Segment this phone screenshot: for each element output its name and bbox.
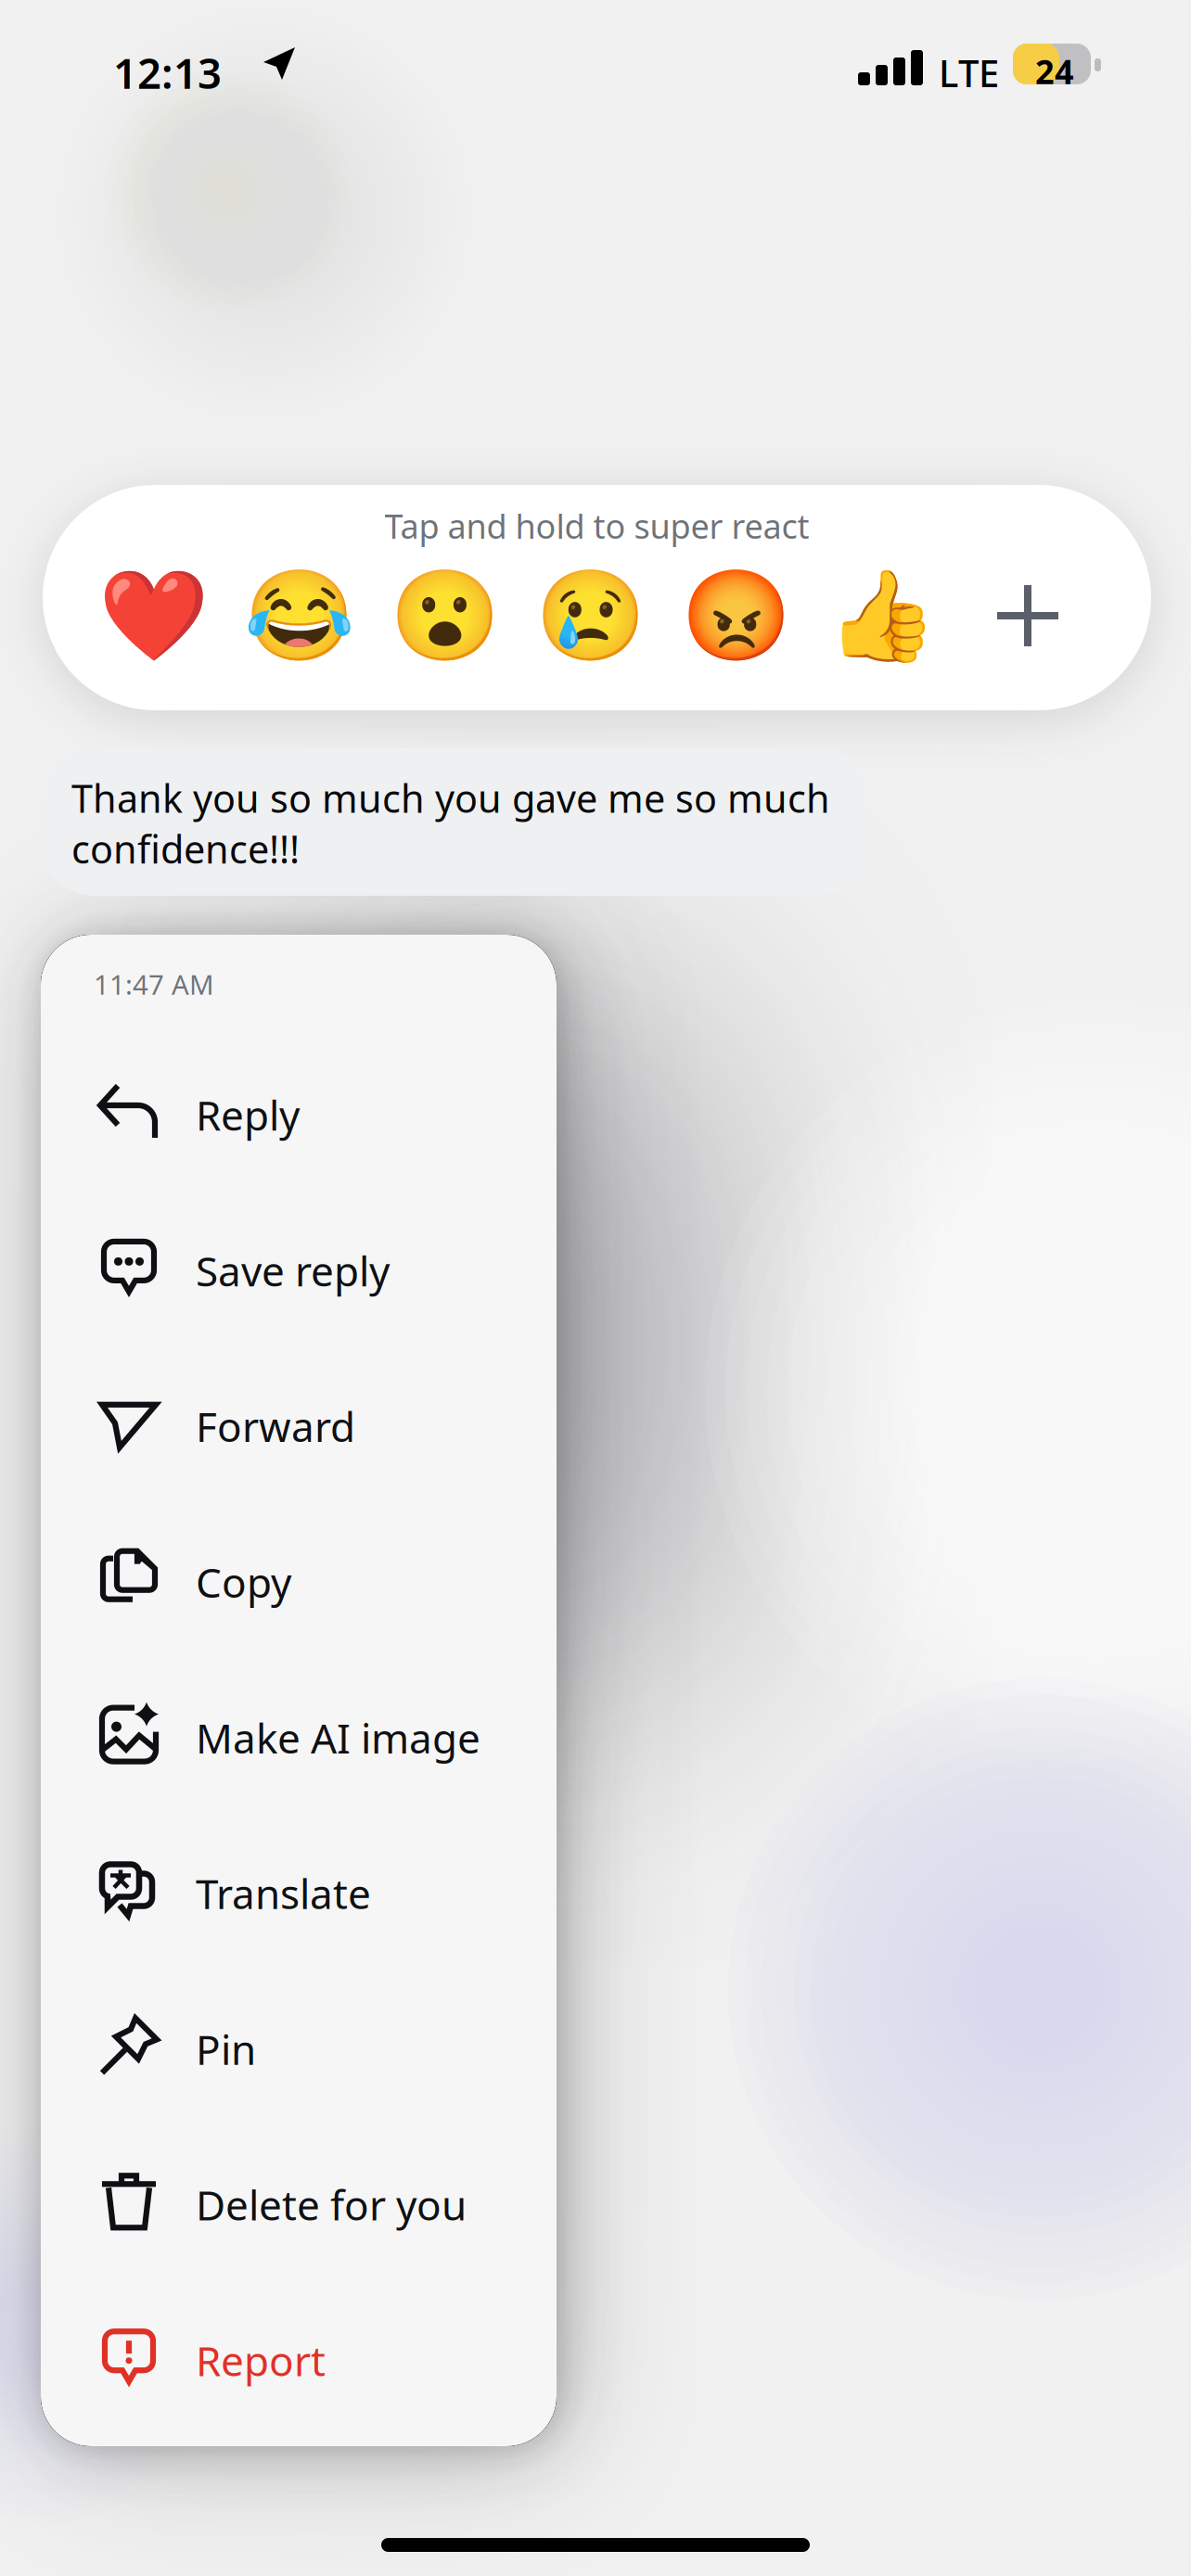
staticText: 11:47 AM	[94, 966, 214, 1002]
button[interactable]: React	[227, 560, 372, 671]
staticText: Pin	[196, 2022, 256, 2076]
button[interactable]: Pin	[41, 1968, 557, 2124]
button[interactable]: Make AI image	[41, 1657, 557, 1812]
staticText: 😢	[535, 565, 647, 667]
staticText: Delete for you	[196, 2178, 467, 2232]
staticText: 😡	[681, 565, 792, 667]
button[interactable]: React	[372, 560, 518, 671]
staticText: Copy	[196, 1555, 291, 1609]
button[interactable]: Forward	[41, 1345, 557, 1501]
staticText: 24	[1035, 49, 1074, 93]
button[interactable]: Translate	[41, 1812, 557, 1968]
staticText: Thank you so much you gave me so much co…	[71, 772, 830, 874]
staticText: 😂	[244, 565, 355, 667]
button[interactable]: React	[81, 560, 227, 671]
button[interactable]: React	[518, 560, 664, 671]
staticText: LTE	[939, 48, 999, 97]
staticText: Report	[196, 2333, 326, 2387]
button[interactable]: Report	[41, 2279, 557, 2435]
button[interactable]: Reply	[41, 1034, 557, 1190]
button[interactable]: Delete for you	[41, 2124, 557, 2279]
button[interactable]: Copy	[41, 1501, 557, 1657]
staticText: Translate	[196, 1866, 371, 1920]
button[interactable]: React	[664, 560, 809, 671]
button[interactable]: Save reply	[41, 1190, 557, 1345]
staticText: Make AI image	[196, 1710, 480, 1765]
staticText: Reply	[196, 1088, 300, 1142]
staticText: 12:13	[113, 45, 222, 100]
staticText: 👍	[826, 565, 938, 667]
button[interactable]: React	[809, 560, 955, 671]
staticText: ❤️	[98, 565, 210, 667]
staticText: Tap and hold to super react	[384, 504, 809, 548]
staticText: 😮	[390, 565, 501, 667]
staticText: Save reply	[196, 1243, 390, 1298]
button[interactable]: More reactions	[955, 560, 1101, 671]
staticText: Forward	[196, 1399, 355, 1453]
